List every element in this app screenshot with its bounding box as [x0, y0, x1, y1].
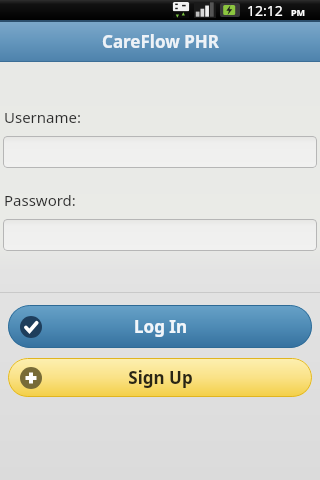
- button[interactable]: Username: [3, 136, 317, 168]
- staticText: Username:: [4, 107, 81, 127]
- staticText: 12:12: [247, 1, 283, 20]
- button[interactable]: Log In: [8, 305, 312, 348]
- staticText: Log In: [134, 315, 187, 338]
- button[interactable]: Password: [3, 219, 317, 251]
- staticText: Password:: [4, 190, 76, 210]
- staticText: Sign Up: [128, 366, 193, 389]
- staticText: CareFlow PHR: [102, 30, 219, 53]
- staticText: PM: [291, 6, 306, 18]
- button[interactable]: Sign Up: [8, 358, 312, 397]
